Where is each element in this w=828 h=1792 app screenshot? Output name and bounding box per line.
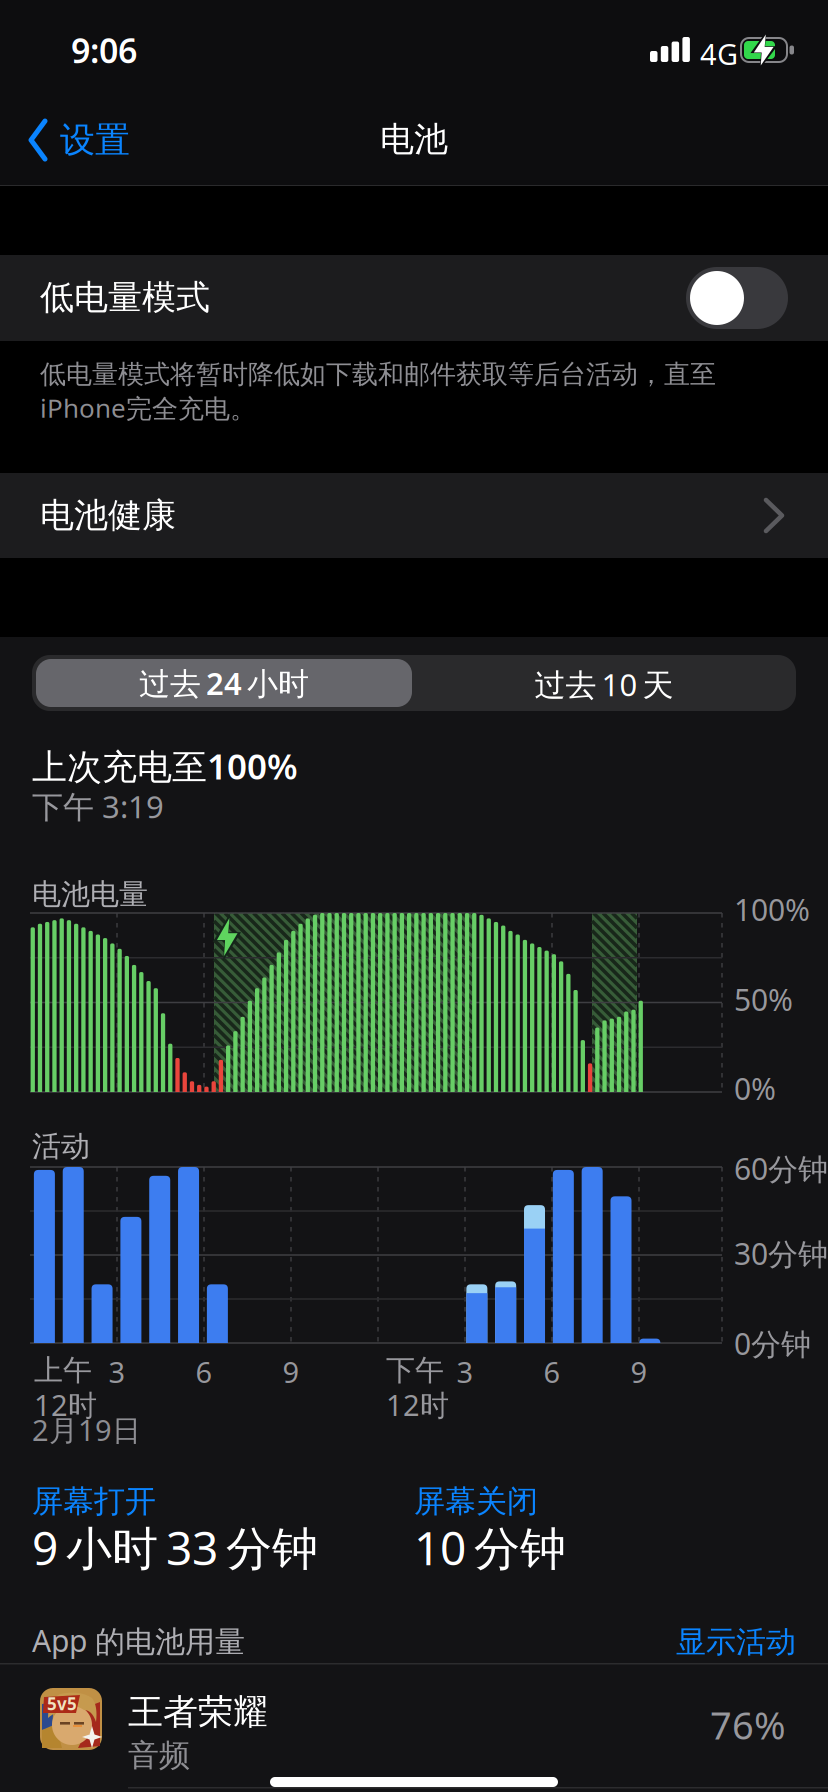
staticText: 电池电量 — [32, 876, 148, 912]
staticText: 电池健康 — [40, 494, 176, 537]
staticText: iPhone完全充电。 — [40, 390, 256, 425]
staticText: 9 小时 33 分钟 — [32, 1516, 318, 1579]
staticText: 0% — [734, 1068, 776, 1109]
staticText: 9:06 — [71, 27, 137, 73]
staticText: App 的电池用量 — [32, 1620, 245, 1661]
staticText: 6 — [543, 1352, 560, 1391]
staticText: 2月19日 — [32, 1410, 141, 1449]
staticText: 下午 3:19 — [32, 785, 164, 827]
button[interactable]: 过去 24 小时 — [36, 659, 412, 707]
staticText: 电池 — [380, 118, 448, 161]
staticText: 音频 — [128, 1736, 190, 1775]
staticText: 低电量模式将暂时降低如下载和邮件获取等后台活动，直至 — [40, 358, 716, 391]
staticText: 上次充电至100% — [32, 742, 298, 790]
staticText: 3 — [108, 1352, 125, 1391]
staticText: 76% — [710, 1699, 786, 1751]
staticText: 低电量模式 — [40, 276, 210, 319]
staticText: 屏幕打开 — [32, 1482, 156, 1521]
staticText: 5v5 — [47, 1692, 77, 1715]
staticText: 下午 — [386, 1352, 444, 1388]
staticText: 100% — [734, 889, 810, 930]
button[interactable]: 低电量模式 — [686, 267, 788, 329]
button[interactable]: 5v5 — [0, 1665, 828, 1792]
staticText: 9 — [630, 1352, 647, 1391]
button[interactable]: 显示活动 — [676, 1623, 796, 1661]
staticText: 4G — [700, 34, 738, 73]
staticText: 12时 — [386, 1385, 449, 1424]
button[interactable]: 过去 10 天 — [416, 663, 792, 705]
staticText: 6 — [195, 1352, 212, 1391]
staticText: 屏幕关闭 — [414, 1482, 538, 1521]
staticText: 上午 — [34, 1352, 92, 1388]
staticText: 30分钟 — [734, 1233, 828, 1274]
staticText: 王者荣耀 — [128, 1690, 268, 1734]
staticText: 过去 10 天 — [534, 663, 673, 705]
staticText: 9 — [282, 1352, 299, 1391]
staticText: 10 分钟 — [414, 1516, 566, 1579]
button[interactable]: 设置 — [28, 118, 130, 162]
staticText: 50% — [734, 979, 793, 1020]
staticText: 60分钟 — [734, 1148, 828, 1189]
staticText: 活动 — [32, 1128, 90, 1164]
staticText: 12时 — [34, 1385, 97, 1424]
staticText: 过去 24 小时 — [139, 662, 309, 704]
staticText: 3 — [456, 1352, 473, 1391]
staticText: 0分钟 — [734, 1323, 811, 1364]
button[interactable]: 电池健康 — [0, 473, 828, 558]
staticText: 显示活动 — [676, 1623, 796, 1661]
staticText: 设置 — [60, 118, 130, 162]
